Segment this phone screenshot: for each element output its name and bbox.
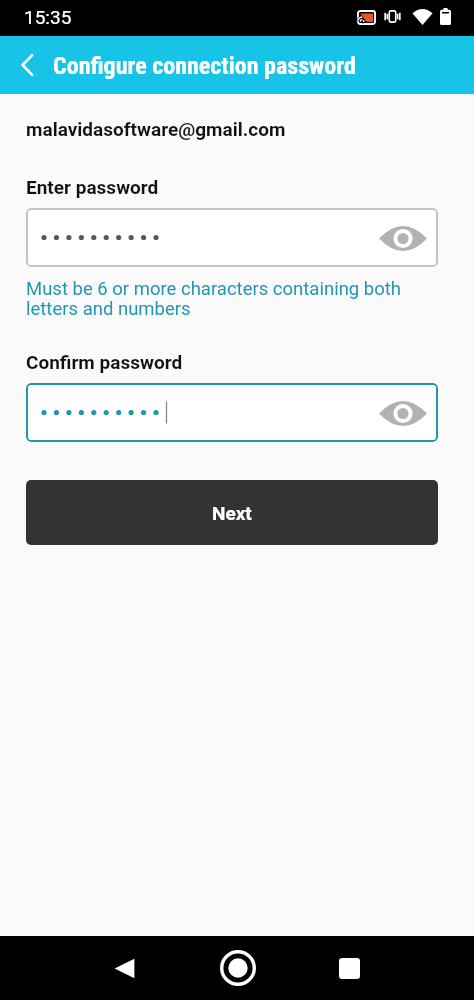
- button[interactable]: Show password: [379, 214, 427, 262]
- staticText: Next: [212, 502, 252, 524]
- staticText: malavidasoftware@gmail.com: [26, 118, 286, 140]
- button[interactable]: Home: [214, 944, 262, 992]
- button[interactable]: Show password: [379, 389, 427, 437]
- button[interactable]: Show password: [26, 383, 438, 442]
- staticText: Configure connection password: [53, 52, 356, 80]
- button[interactable]: Show password: [26, 208, 438, 267]
- staticText: Must be 6 or more characters containing …: [26, 278, 402, 320]
- button[interactable]: Recent apps: [325, 944, 373, 992]
- button[interactable]: Navigate up: [4, 36, 52, 94]
- staticText: 15:35: [24, 6, 72, 28]
- button[interactable]: Back: [100, 944, 148, 992]
- staticText: Enter password: [26, 176, 159, 198]
- button[interactable]: Next: [26, 480, 438, 545]
- staticText: Confirm password: [26, 351, 183, 373]
